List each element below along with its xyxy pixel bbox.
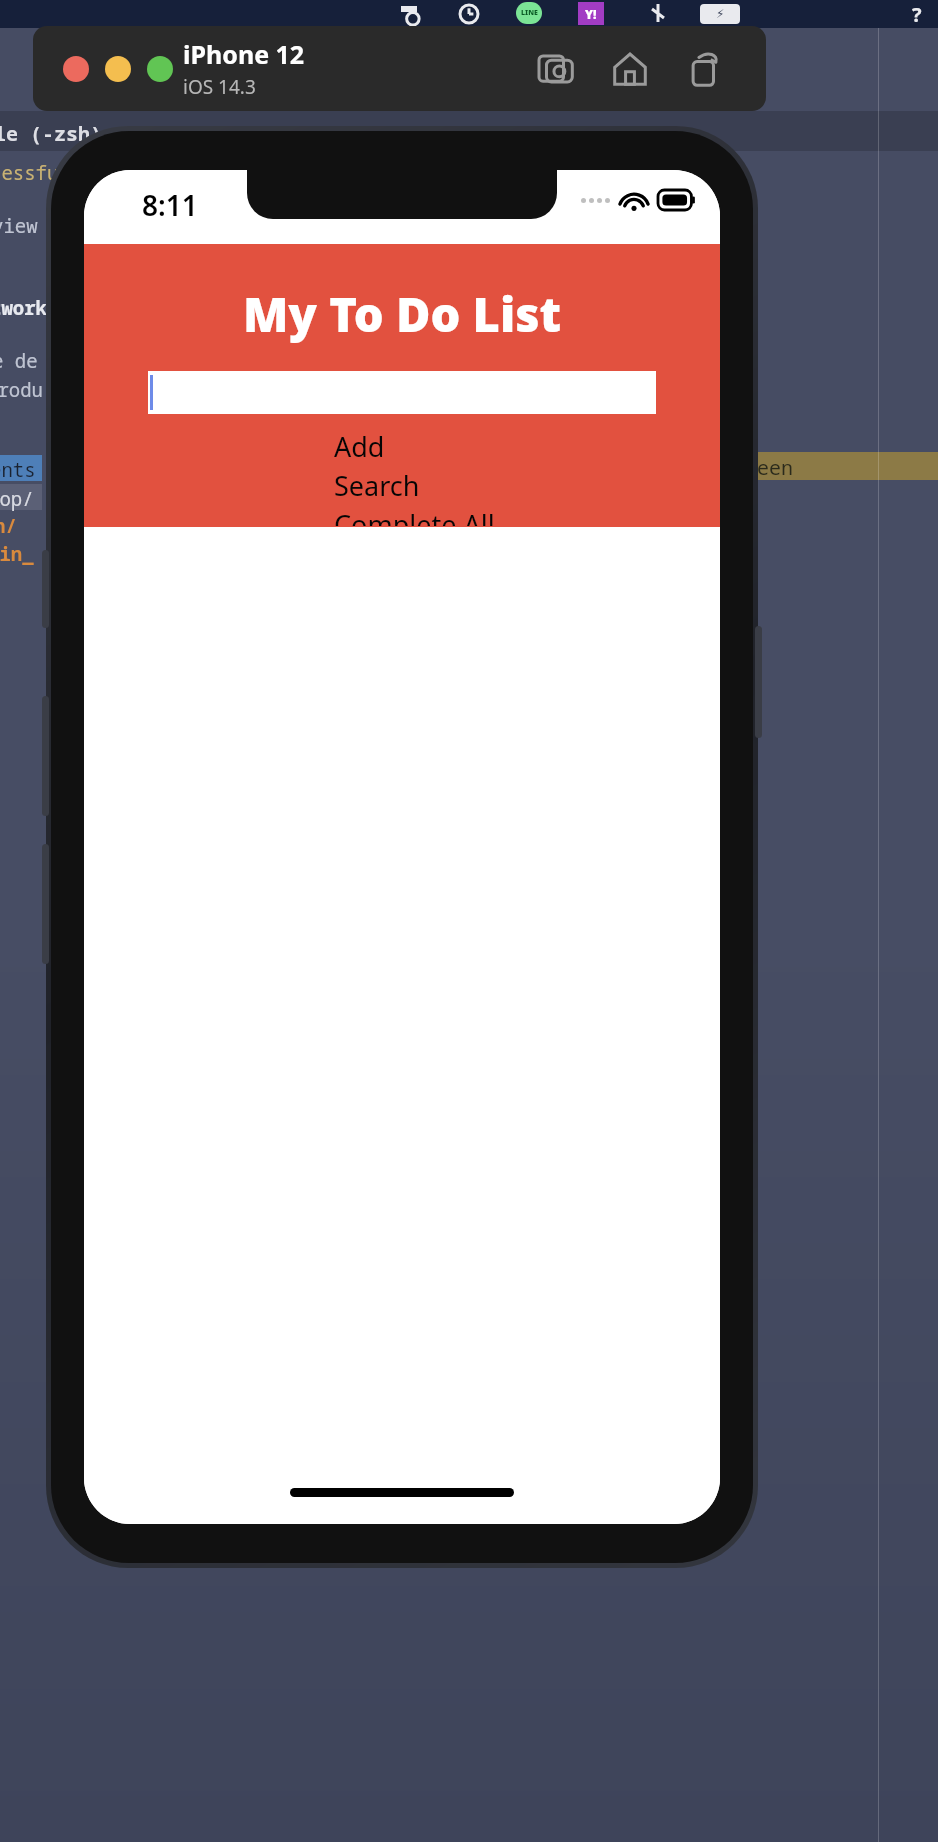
staticText: Add xyxy=(334,428,385,465)
button[interactable]: Close xyxy=(63,56,89,82)
staticText: top/ xyxy=(0,486,34,512)
button[interactable]: Screenshot xyxy=(536,49,576,89)
staticText: le (-zsh) xyxy=(0,120,102,147)
staticText: e de xyxy=(0,348,38,374)
staticText: n/ xyxy=(0,513,17,539)
button[interactable]: Search xyxy=(334,466,420,505)
staticText: ⚡ xyxy=(716,7,725,21)
staticText: min_ xyxy=(0,541,34,567)
staticText: produ xyxy=(0,377,44,403)
button[interactable]: Zoom xyxy=(147,56,173,82)
staticText: My To Do List xyxy=(84,282,720,346)
staticText: Y! xyxy=(585,6,597,22)
staticText: 8:11 xyxy=(142,186,198,224)
staticText: ? xyxy=(912,1,922,28)
staticText: Complete All xyxy=(334,506,495,526)
button[interactable]: Home xyxy=(610,49,650,89)
button[interactable]: Rotate xyxy=(684,49,724,89)
staticText: Search xyxy=(334,467,420,504)
staticText: een xyxy=(757,454,793,481)
staticText: view xyxy=(0,213,38,239)
button[interactable]: Complete All xyxy=(334,505,495,527)
staticText: cessful xyxy=(0,160,70,186)
staticText: iOS 14.3 xyxy=(183,74,256,100)
staticText: iPhone 12 xyxy=(183,37,305,71)
button[interactable]: Minimize xyxy=(105,56,131,82)
button[interactable]: To do text field xyxy=(148,371,656,414)
staticText: ents xyxy=(0,457,36,483)
staticText: twork xyxy=(0,295,48,321)
button[interactable]: Add xyxy=(334,427,385,466)
staticText: LINE xyxy=(521,8,538,18)
